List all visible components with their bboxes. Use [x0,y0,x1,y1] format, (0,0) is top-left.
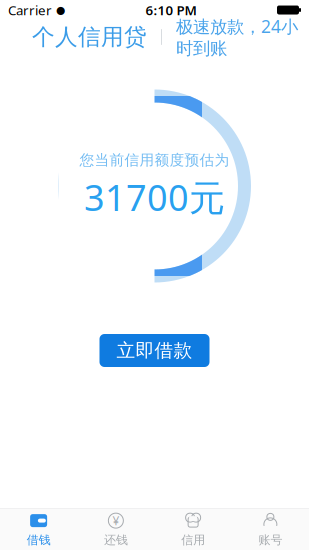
staticText: 账号 [258,533,282,547]
staticText: 还钱 [104,533,128,547]
staticText: Carrier [8,1,52,19]
staticText: 借钱 [27,533,51,547]
button[interactable]: ¥ [77,509,154,550]
staticText: 极速放款，24小时到账 [176,15,298,59]
staticText: 您当前信用额度预估为 [79,151,229,169]
button[interactable]: 立即借款 [99,334,209,367]
staticText: 个人信用贷 [32,23,147,51]
staticText: 31700元 [84,173,225,221]
staticText: ¥ [112,513,119,529]
button[interactable]: 信用 [154,509,232,550]
button[interactable]: 账号 [232,509,309,550]
staticText: 信用 [181,533,205,547]
staticText: ● [56,4,65,16]
staticText: 6:10 PM [145,1,196,19]
staticText: 立即借款 [116,339,192,362]
button[interactable]: 借钱 [0,509,77,550]
